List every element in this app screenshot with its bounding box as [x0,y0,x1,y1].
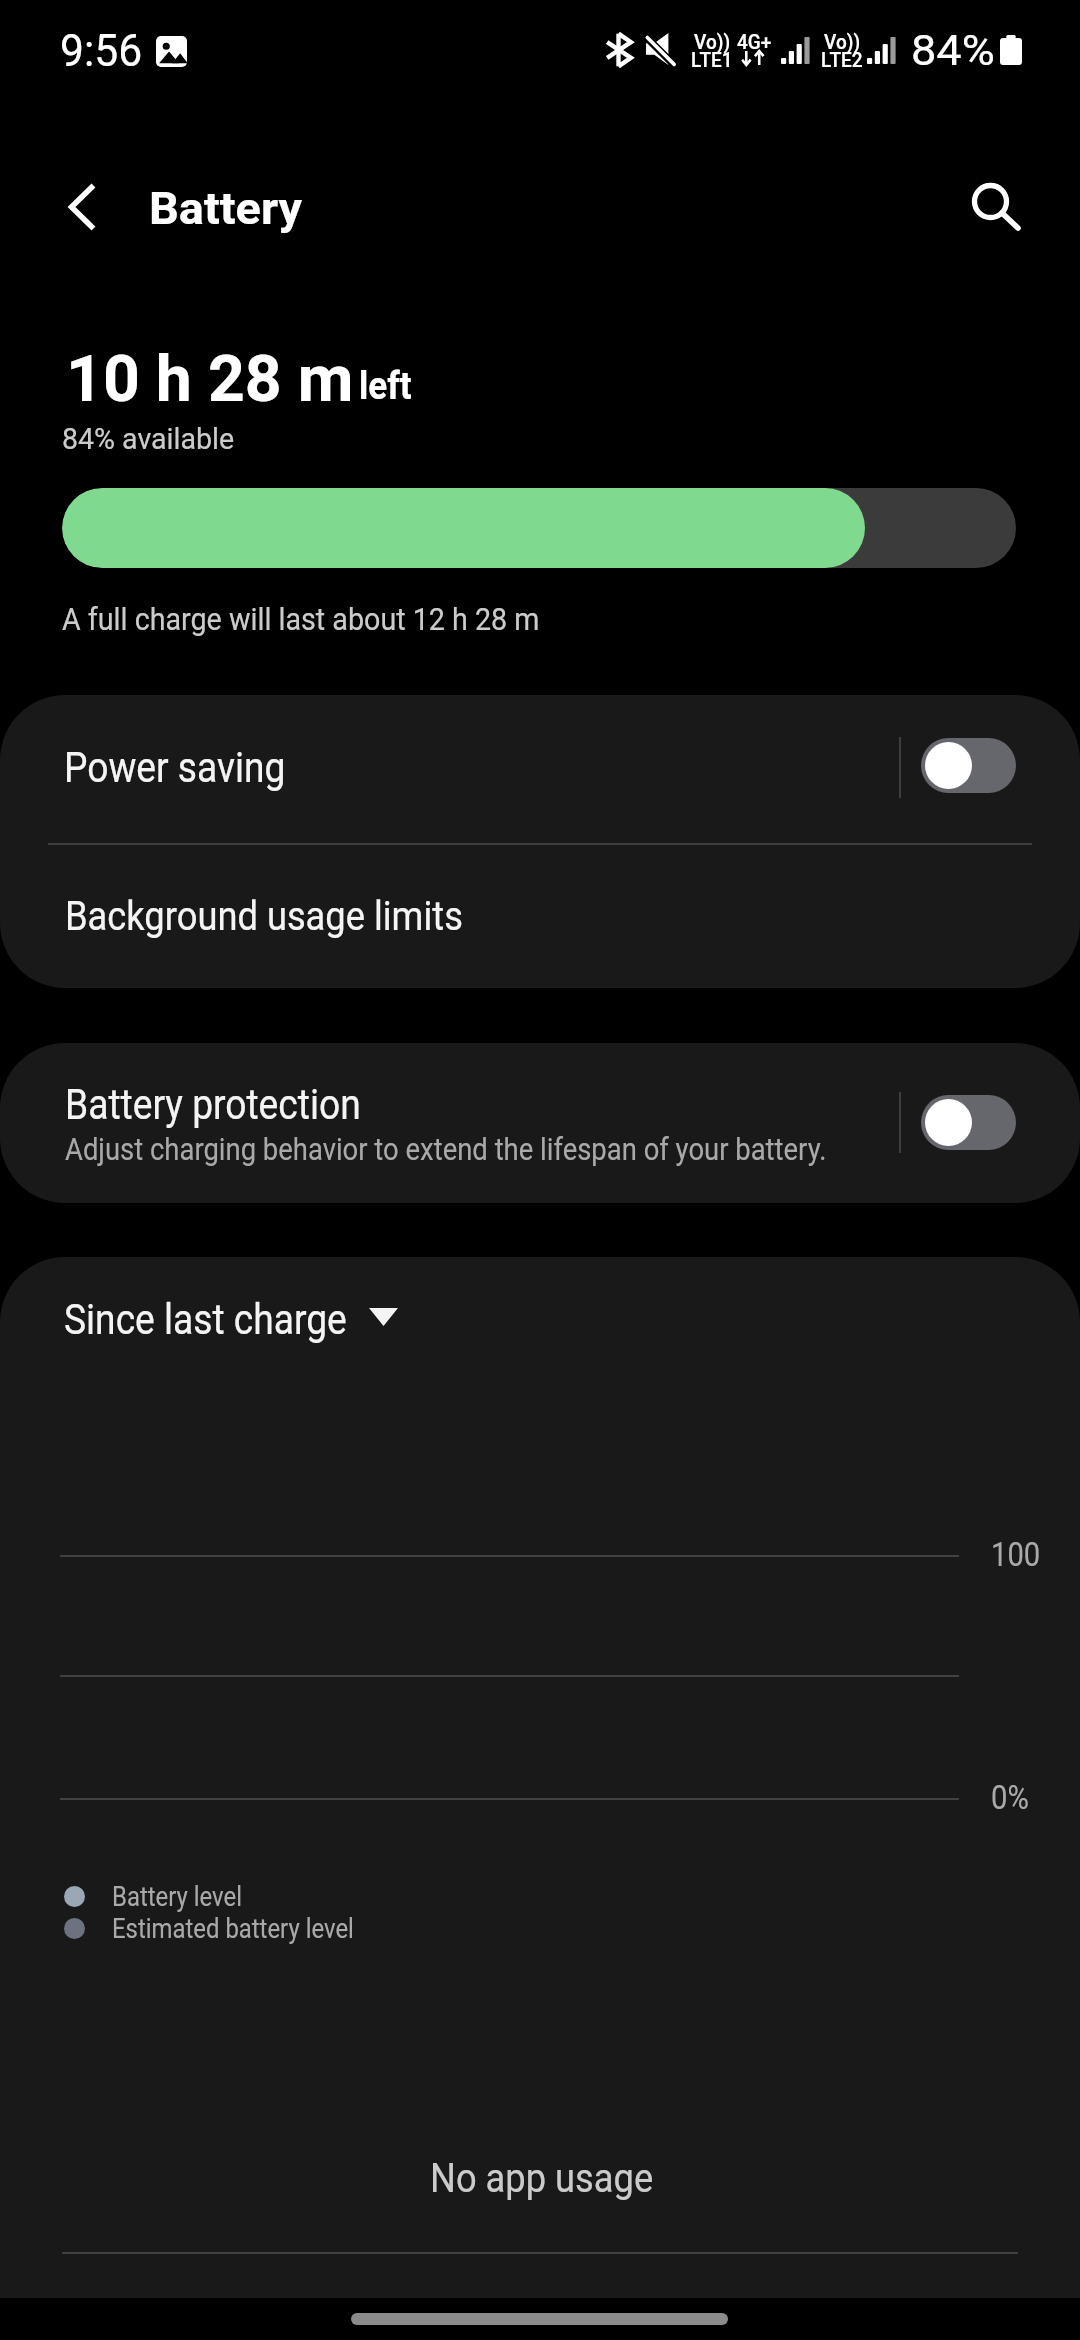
staticText: Battery protection [65,1080,361,1129]
staticText: LTE1 [691,48,733,71]
button[interactable] [0,844,1080,988]
staticText: LTE2 [821,48,863,71]
staticText: Battery level [112,1881,242,1913]
staticText: Vo)) [824,30,861,53]
staticText: Adjust charging behavior to extend the l… [65,1131,827,1167]
staticText: 0% [991,1778,1029,1817]
staticText: 10 h 28 m [66,341,354,417]
button[interactable] [0,695,1080,843]
staticText: Estimated battery level [112,1913,354,1945]
staticText: A full charge will last about 12 h 28 m [62,601,540,637]
button[interactable]: Search [948,158,1034,244]
staticText: Battery [149,182,303,235]
staticText: Background usage limits [65,892,463,940]
staticText: No app usage [430,2154,654,2202]
button[interactable] [0,1043,1080,1203]
button[interactable]: Toggle [897,1073,1040,1172]
button[interactable] [50,1290,420,1350]
staticText: Vo)) [694,30,731,53]
staticText: Power saving [64,743,286,792]
staticText: 4G+ [737,30,772,53]
button[interactable]: Toggle [897,716,1040,815]
staticText: left [359,364,412,409]
staticText: 100 [991,1535,1041,1574]
button[interactable]: Navigate up [39,164,125,250]
staticText: 9:56 [60,25,142,77]
staticText: 84% [911,25,995,75]
staticText: Since last charge [64,1295,347,1344]
staticText: 84% available [62,421,234,456]
